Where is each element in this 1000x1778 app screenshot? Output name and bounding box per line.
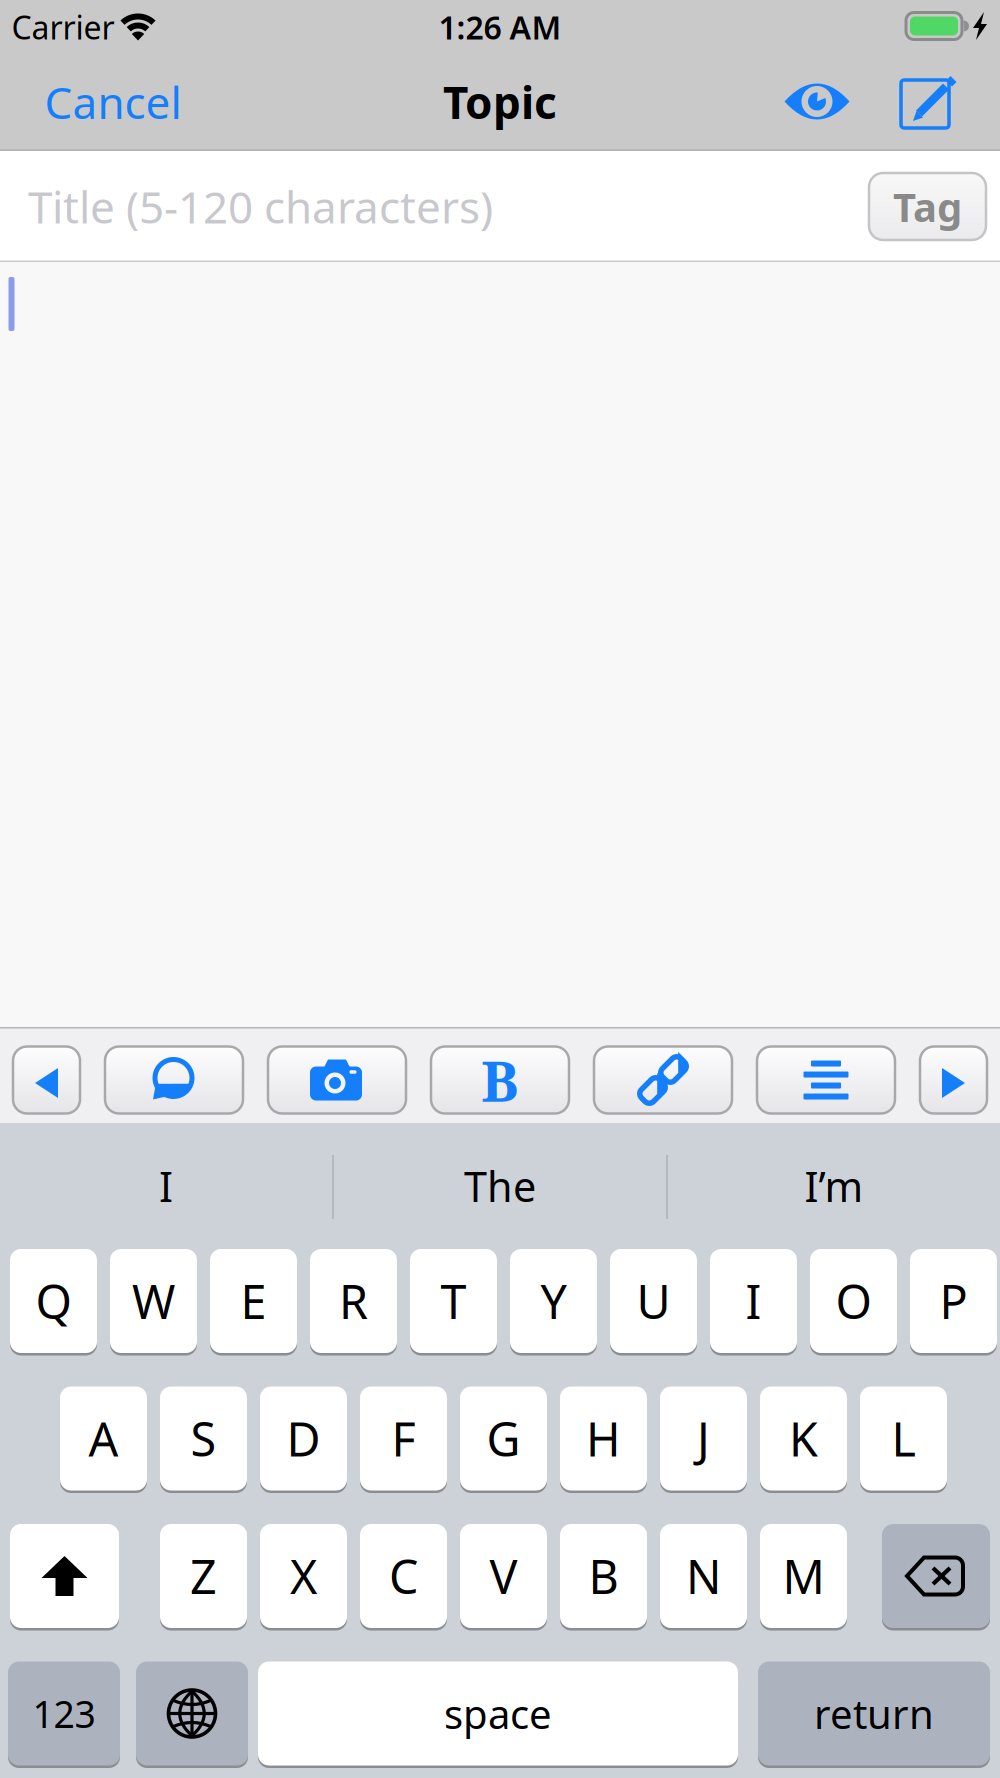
- staticText: Topic: [443, 73, 557, 131]
- staticText: T: [440, 1270, 466, 1332]
- staticText: V: [489, 1545, 517, 1607]
- button[interactable]: V: [460, 1522, 547, 1629]
- button[interactable]: Shift: [10, 1522, 119, 1629]
- button[interactable]: Quote: [105, 1046, 243, 1113]
- button[interactable]: D: [260, 1385, 347, 1492]
- button[interactable]: Y: [510, 1247, 597, 1354]
- button[interactable]: M: [760, 1522, 847, 1629]
- button[interactable]: Next keyboard: [136, 1660, 248, 1767]
- staticText: D: [286, 1407, 320, 1469]
- staticText: space: [444, 1687, 552, 1740]
- button[interactable]: F: [360, 1385, 447, 1492]
- button[interactable]: R: [310, 1247, 397, 1354]
- button[interactable]: T: [410, 1247, 497, 1354]
- button[interactable]: Preview: [784, 82, 849, 121]
- button[interactable]: The: [335, 1125, 665, 1247]
- staticText: E: [240, 1270, 266, 1332]
- button[interactable]: Bold: [431, 1046, 569, 1113]
- staticText: I’m: [804, 1159, 863, 1213]
- staticText: I: [159, 1159, 173, 1213]
- button[interactable]: Redo: [920, 1046, 987, 1113]
- staticText: W: [132, 1270, 175, 1332]
- staticText: C: [389, 1545, 418, 1607]
- staticText: B: [588, 1545, 618, 1607]
- staticText: F: [391, 1407, 415, 1469]
- button[interactable]: A: [60, 1385, 147, 1492]
- button[interactable]: Undo: [13, 1046, 80, 1113]
- button[interactable]: P: [910, 1247, 997, 1354]
- staticText: Tag: [893, 180, 962, 233]
- button[interactable]: O: [810, 1247, 897, 1354]
- button[interactable]: H: [560, 1385, 647, 1492]
- button[interactable]: G: [460, 1385, 547, 1492]
- staticText: The: [464, 1159, 536, 1213]
- button[interactable]: return: [758, 1660, 990, 1767]
- staticText: return: [814, 1687, 934, 1740]
- staticText: B: [481, 1042, 519, 1118]
- staticText: U: [636, 1270, 670, 1332]
- button[interactable]: I: [710, 1247, 797, 1354]
- staticText: N: [686, 1545, 721, 1607]
- button[interactable]: U: [610, 1247, 697, 1354]
- staticText: S: [190, 1407, 216, 1469]
- staticText: Carrier: [11, 6, 114, 48]
- button[interactable]: Z: [160, 1522, 247, 1629]
- staticText: O: [835, 1270, 871, 1332]
- staticText: 123: [32, 1689, 95, 1738]
- staticText: Z: [190, 1545, 217, 1607]
- staticText: R: [339, 1270, 368, 1332]
- staticText: J: [697, 1407, 710, 1469]
- staticText: I: [745, 1270, 761, 1332]
- staticText: Y: [540, 1270, 566, 1332]
- staticText: 1:26 AM: [438, 6, 561, 48]
- button[interactable]: Photo: [268, 1046, 406, 1113]
- staticText: M: [782, 1545, 824, 1607]
- button[interactable]: J: [660, 1385, 747, 1492]
- staticText: Title (5-120 characters): [28, 177, 493, 236]
- button[interactable]: Cancel: [44, 73, 181, 131]
- button[interactable]: Link: [594, 1046, 732, 1113]
- staticText: H: [586, 1407, 621, 1469]
- staticText: L: [891, 1407, 915, 1469]
- staticText: K: [789, 1407, 818, 1469]
- button[interactable]: Compose: [901, 74, 957, 134]
- button[interactable]: Numbers: [8, 1660, 120, 1767]
- button[interactable]: X: [260, 1522, 347, 1629]
- button[interactable]: Tag: [869, 173, 986, 240]
- button[interactable]: I’m: [669, 1125, 999, 1247]
- button[interactable]: W: [110, 1247, 197, 1354]
- button[interactable]: S: [160, 1385, 247, 1492]
- staticText: Q: [35, 1270, 71, 1332]
- staticText: P: [939, 1270, 967, 1332]
- button[interactable]: L: [860, 1385, 947, 1492]
- button[interactable]: Delete: [882, 1522, 990, 1629]
- staticText: A: [88, 1407, 118, 1469]
- button[interactable]: space: [258, 1660, 738, 1767]
- button[interactable]: N: [660, 1522, 747, 1629]
- button[interactable]: E: [210, 1247, 297, 1354]
- button[interactable]: Q: [10, 1247, 97, 1354]
- staticText: G: [486, 1407, 520, 1469]
- staticText: X: [290, 1545, 317, 1607]
- button[interactable]: K: [760, 1385, 847, 1492]
- staticText: Cancel: [44, 73, 181, 131]
- button[interactable]: I: [1, 1125, 331, 1247]
- button[interactable]: Formatting: [757, 1046, 895, 1113]
- button[interactable]: B: [560, 1522, 647, 1629]
- button[interactable]: C: [360, 1522, 447, 1629]
